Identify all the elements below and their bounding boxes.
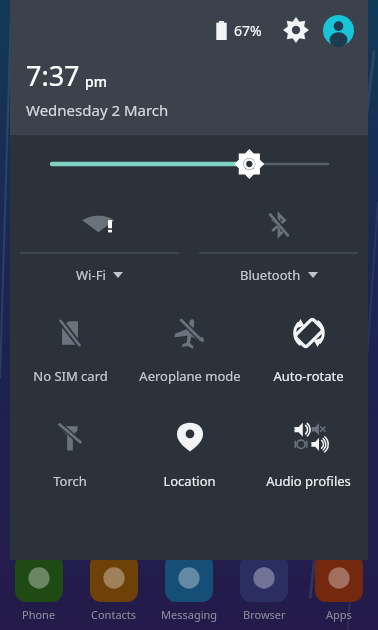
button[interactable]: Phone xyxy=(4,554,74,622)
button[interactable]: Auto-rotate xyxy=(249,298,368,403)
staticText: Browser xyxy=(243,607,286,622)
button[interactable]: Location xyxy=(130,403,249,508)
staticText: Aeroplane mode xyxy=(139,367,241,385)
staticText: Messaging xyxy=(161,607,218,622)
staticText: Auto-rotate xyxy=(273,367,344,385)
button[interactable]: No SIM card xyxy=(10,298,130,403)
staticText: 7:37 xyxy=(26,57,80,94)
staticText: Torch xyxy=(53,472,87,490)
button[interactable]: Aeroplane mode xyxy=(130,298,249,403)
button[interactable]: Apps xyxy=(304,554,374,622)
button[interactable]: Brightness xyxy=(10,135,368,193)
staticText: Audio profiles xyxy=(266,472,351,490)
staticText: Contacts xyxy=(91,607,137,622)
button[interactable]: Messaging xyxy=(154,554,224,622)
staticText: Location xyxy=(163,472,216,490)
staticText: Bluetooth xyxy=(240,266,301,284)
staticText: Wednesday 2 March xyxy=(26,100,169,120)
staticText: No SIM card xyxy=(33,367,108,385)
staticText: Phone xyxy=(22,607,56,622)
button[interactable]: Contacts xyxy=(79,554,149,622)
button[interactable]: Bluetooth xyxy=(189,193,368,298)
button[interactable]: Torch xyxy=(10,403,130,508)
button[interactable]: Audio profiles xyxy=(249,403,368,508)
staticText: Apps xyxy=(326,607,352,622)
button[interactable]: Settings xyxy=(278,12,314,48)
button[interactable]: Wi-Fi xyxy=(10,193,189,298)
staticText: Wi-Fi xyxy=(76,266,106,284)
button[interactable]: User profile xyxy=(320,12,356,48)
button[interactable]: Browser xyxy=(229,554,299,622)
staticText: 67% xyxy=(234,21,262,40)
staticText: pm xyxy=(85,72,107,91)
